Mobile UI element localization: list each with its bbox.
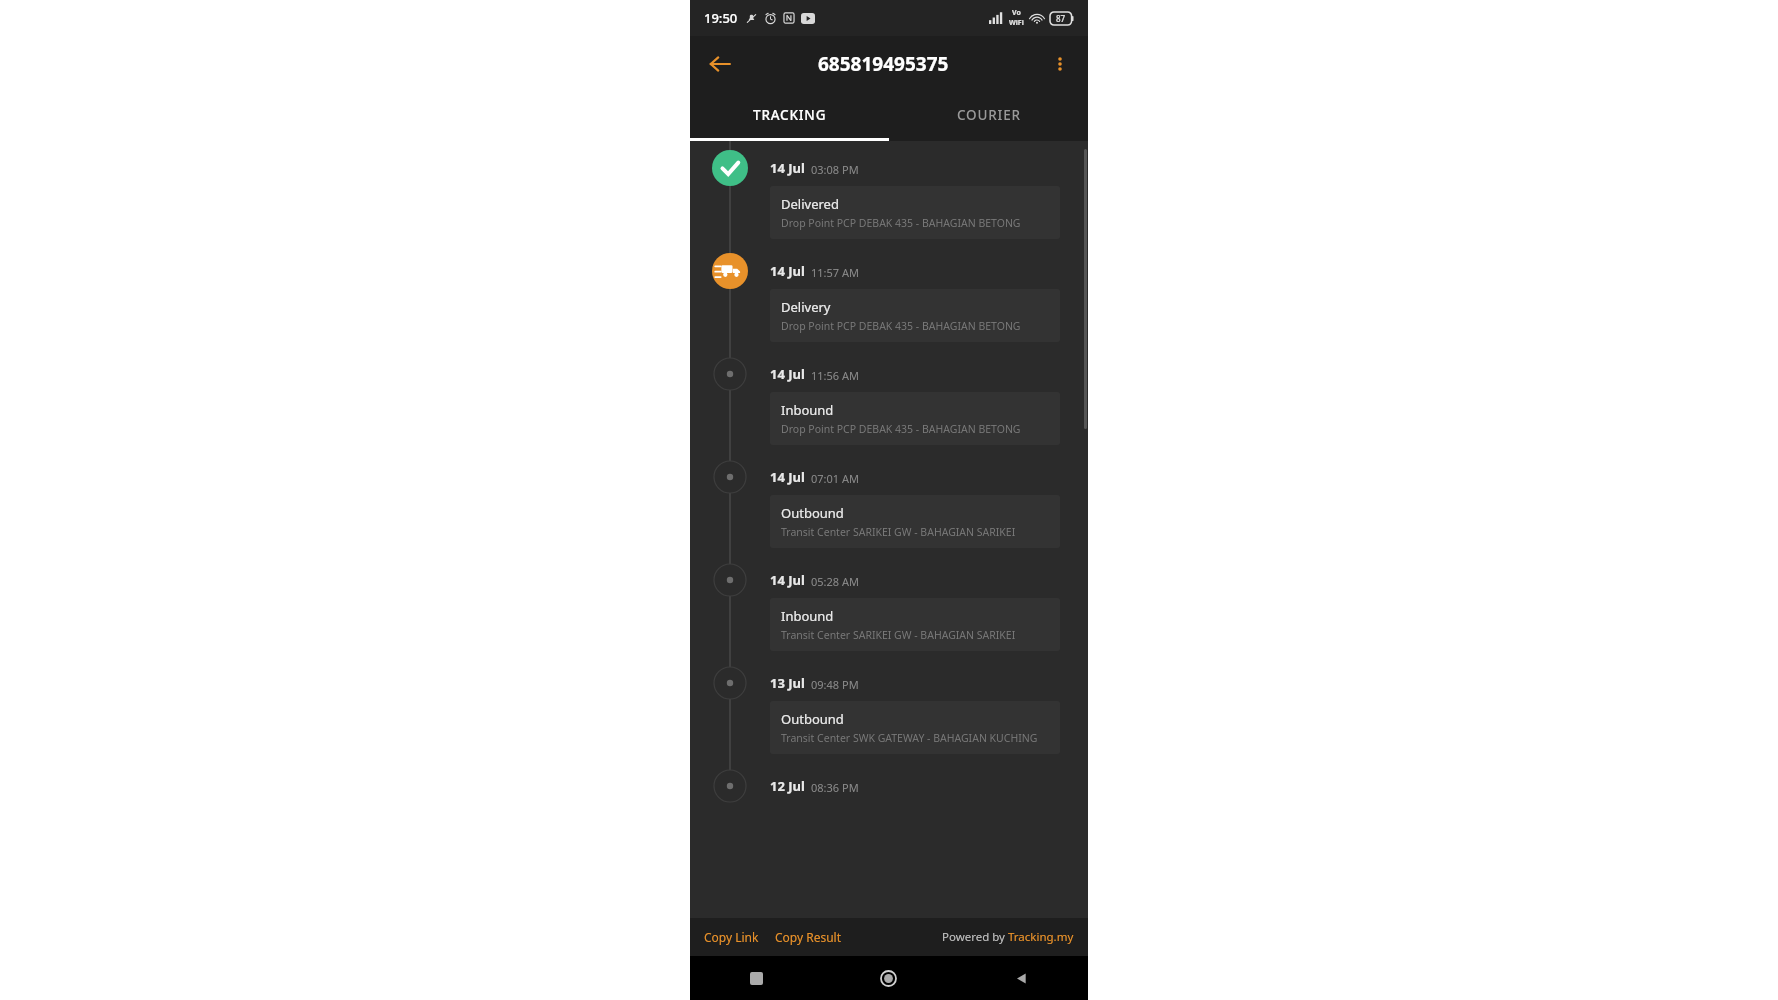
staticText: 14 Jul	[770, 468, 805, 486]
staticText: 87	[1056, 13, 1066, 24]
button[interactable]: 12 Jul	[690, 759, 1088, 799]
staticText: Transit Center SWK GATEWAY - BAHAGIAN KU…	[781, 731, 1038, 745]
button[interactable]: 14 Jul	[690, 141, 1088, 244]
staticText: 03:08 PM	[811, 162, 859, 177]
button[interactable]: Copy Result	[773, 925, 844, 949]
button[interactable]: COURIER	[889, 92, 1088, 138]
staticText: Delivered	[781, 195, 839, 213]
staticText: Tracking.my	[1008, 929, 1074, 945]
button[interactable]: 14 Jul	[690, 244, 1088, 347]
button[interactable]: Back	[698, 42, 742, 86]
staticText: 08:36 PM	[811, 780, 859, 795]
staticText: 12 Jul	[770, 777, 805, 795]
button[interactable]: 14 Jul	[690, 553, 1088, 656]
button[interactable]: Back	[955, 956, 1088, 1000]
staticText: Transit Center SARIKEI GW - BAHAGIAN SAR…	[781, 525, 1016, 539]
staticText: 14 Jul	[770, 571, 805, 589]
staticText: 07:01 AM	[811, 471, 859, 486]
staticText: WiFi	[1009, 18, 1024, 28]
button[interactable]: Copy Link	[702, 925, 761, 949]
staticText: 09:48 PM	[811, 677, 859, 692]
staticText: TRACKING	[753, 106, 827, 124]
button[interactable]: 13 Jul	[690, 656, 1088, 759]
staticText: Inbound	[781, 401, 834, 419]
staticText: 14 Jul	[770, 159, 805, 177]
staticText: Drop Point PCP DEBAK 435 - BAHAGIAN BETO…	[781, 216, 1021, 230]
staticText: 11:57 AM	[811, 265, 859, 280]
staticText: 19:50	[704, 9, 738, 27]
button[interactable]: 14 Jul	[690, 347, 1088, 450]
staticText: Delivery	[781, 298, 831, 316]
staticText: 685819495375	[818, 51, 949, 77]
staticText: Inbound	[781, 607, 834, 625]
staticText: Drop Point PCP DEBAK 435 - BAHAGIAN BETO…	[781, 319, 1021, 333]
staticText: Powered by	[942, 929, 1008, 945]
staticText: 14 Jul	[770, 262, 805, 280]
staticText: 14 Jul	[770, 365, 805, 383]
button[interactable]: 14 Jul	[690, 450, 1088, 553]
staticText: Outbound	[781, 504, 844, 522]
staticText: 11:56 AM	[811, 368, 859, 383]
button[interactable]: Powered by	[942, 929, 1074, 945]
staticText: Transit Center SARIKEI GW - BAHAGIAN SAR…	[781, 628, 1016, 642]
button[interactable]: TRACKING	[690, 92, 889, 138]
staticText: Copy Link	[704, 929, 759, 945]
staticText: Drop Point PCP DEBAK 435 - BAHAGIAN BETO…	[781, 422, 1021, 436]
staticText: Copy Result	[775, 929, 842, 945]
staticText: 05:28 AM	[811, 574, 859, 589]
staticText: Vo	[1012, 8, 1021, 18]
staticText: Outbound	[781, 710, 844, 728]
staticText: 13 Jul	[770, 674, 805, 692]
button[interactable]: Recent apps	[690, 956, 822, 1000]
staticText: COURIER	[957, 106, 1021, 124]
button[interactable]: Home	[822, 956, 955, 1000]
button[interactable]: More options	[1038, 42, 1082, 86]
